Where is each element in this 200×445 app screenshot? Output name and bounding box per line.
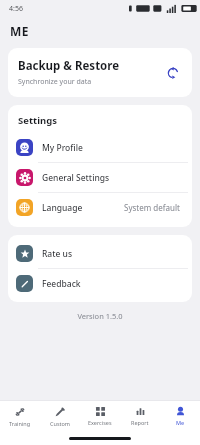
button[interactable]: Rate us xyxy=(8,239,192,268)
button[interactable]: Training xyxy=(0,401,40,431)
button[interactable]: General Settings xyxy=(8,163,192,192)
staticText: Feedback xyxy=(42,278,81,290)
staticText: ME xyxy=(10,23,30,39)
staticText: Version 1.5.0 xyxy=(0,311,200,321)
button[interactable]: My Profile xyxy=(8,133,192,162)
button[interactable]: Report xyxy=(120,401,160,431)
button[interactable]: Me xyxy=(160,401,200,431)
button[interactable]: Backup & Restore xyxy=(8,48,192,97)
staticText: Backup & Restore xyxy=(18,58,120,74)
staticText: Language xyxy=(42,202,83,214)
other: Sync xyxy=(164,64,182,82)
staticText: Report xyxy=(131,419,149,426)
staticText: 4:56 xyxy=(9,4,23,14)
button[interactable]: Feedback xyxy=(8,269,192,298)
button[interactable]: Custom xyxy=(40,401,80,431)
staticText: Me xyxy=(176,419,185,426)
staticText: Training xyxy=(9,420,31,427)
button[interactable]: Exercises xyxy=(80,401,120,431)
staticText: Synchronize your data xyxy=(18,77,92,87)
staticText: Custom xyxy=(50,420,70,427)
staticText: Settings xyxy=(18,114,57,127)
staticText: System default xyxy=(124,202,180,213)
staticText: Exercises xyxy=(88,419,112,426)
staticText: Rate us xyxy=(42,248,73,260)
staticText: General Settings xyxy=(42,172,110,184)
staticText: My Profile xyxy=(42,142,83,154)
button[interactable]: Language xyxy=(8,193,192,222)
